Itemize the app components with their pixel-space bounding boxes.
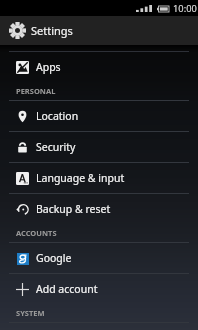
button[interactable]: Security (0, 132, 198, 162)
button[interactable]: Backup & reset (0, 194, 198, 224)
staticText: Add account (36, 282, 98, 296)
button[interactable]: Google (0, 243, 198, 273)
button[interactable]: Add account (0, 274, 198, 304)
button[interactable]: Settings (0, 16, 198, 45)
staticText: SYSTEM (16, 308, 45, 318)
staticText: Location (36, 109, 79, 123)
staticText: Settings (31, 23, 73, 38)
button[interactable]: Language & input (0, 163, 198, 193)
button[interactable]: Location (0, 101, 198, 131)
staticText: 10:00 (173, 2, 197, 15)
staticText: Security (36, 140, 76, 154)
staticText: ACCOUNTS (16, 228, 57, 238)
staticText: Apps (36, 60, 61, 74)
button[interactable]: Apps (0, 52, 198, 82)
staticText: Language & input (36, 171, 125, 185)
staticText: Backup & reset (36, 202, 111, 216)
staticText: Google (36, 251, 72, 265)
staticText: PERSONAL (16, 86, 56, 96)
